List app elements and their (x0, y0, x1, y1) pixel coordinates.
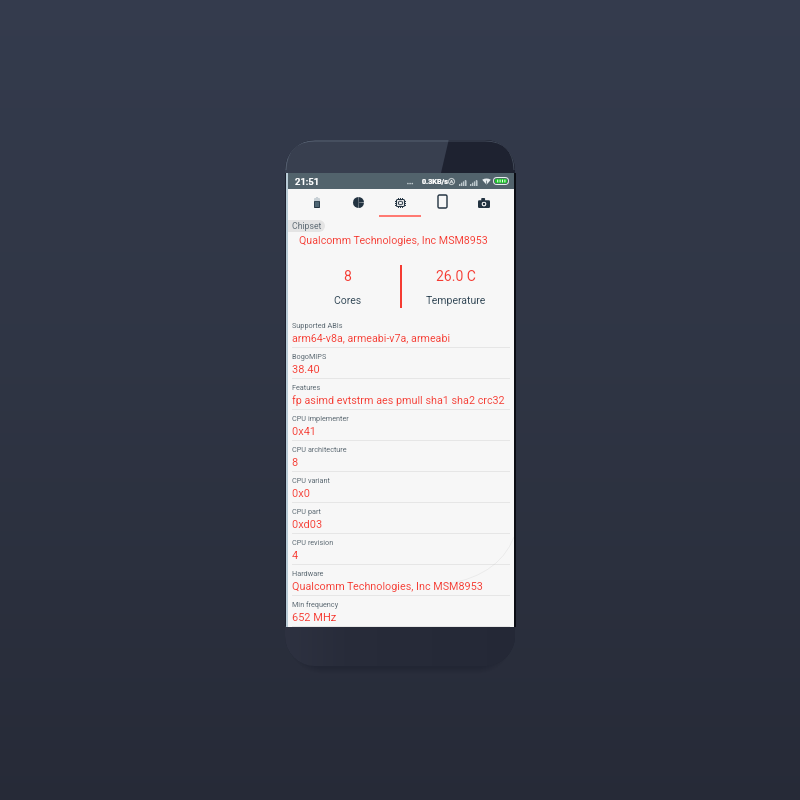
staticText: 4 (292, 549, 299, 562)
button[interactable]: 26.0 C (401, 265, 514, 308)
staticText: arm64-v8a, armeabi-v7a, armeabi (292, 332, 451, 345)
staticText: 0x0 (292, 487, 310, 500)
button[interactable]: 8 (288, 265, 401, 308)
staticText: CPU implementer (292, 414, 349, 423)
staticText: Cores (334, 294, 362, 306)
button[interactable]: Device (421, 189, 463, 218)
staticText: 0x41 (292, 425, 317, 438)
staticText: 8 (344, 268, 352, 284)
button[interactable]: Storage (337, 189, 379, 218)
button[interactable]: Camera (463, 189, 505, 218)
button[interactable]: Supported ABIs (288, 316, 514, 347)
button[interactable]: Features (288, 378, 514, 409)
staticText: fp asimd evtstrm aes pmull sha1 sha2 crc… (292, 394, 505, 407)
staticText: BogoMIPS (292, 352, 327, 361)
button[interactable]: CPU part (288, 502, 514, 533)
button[interactable]: CPU architecture (288, 440, 514, 471)
button[interactable]: Min frequency (288, 595, 514, 626)
staticText: 21:51 (295, 176, 320, 187)
staticText: 26.0 C (436, 268, 476, 284)
button[interactable]: CPU variant (288, 471, 514, 502)
staticText: 0.3KB/s (422, 177, 448, 185)
staticText: Qualcomm Technologies, Inc MSM8953 (299, 234, 488, 247)
staticText: 8 (292, 456, 299, 469)
button[interactable]: BogoMIPS (288, 347, 514, 378)
staticText: Supported ABIs (292, 321, 343, 330)
staticText: Qualcomm Technologies, Inc MSM8953 (292, 580, 483, 593)
button[interactable]: CPU revision (288, 533, 514, 564)
button[interactable]: Battery (296, 189, 337, 218)
staticText: 38.40 (292, 363, 320, 376)
staticText: CPU part (292, 507, 321, 516)
staticText: CPU architecture (292, 445, 347, 454)
staticText: Hardware (292, 569, 324, 578)
staticText: 0xd03 (292, 518, 323, 531)
staticText: 652 MHz (292, 611, 337, 624)
staticText: CPU revision (292, 538, 334, 547)
staticText: Min frequency (292, 600, 339, 609)
button[interactable]: Chipset (379, 189, 421, 218)
button[interactable]: Hardware (288, 564, 514, 595)
staticText: Features (292, 383, 321, 392)
staticText: Chipset (292, 221, 322, 231)
button[interactable]: CPU implementer (288, 409, 514, 440)
staticText: CPU variant (292, 476, 330, 485)
staticText: Temperature (426, 294, 486, 306)
